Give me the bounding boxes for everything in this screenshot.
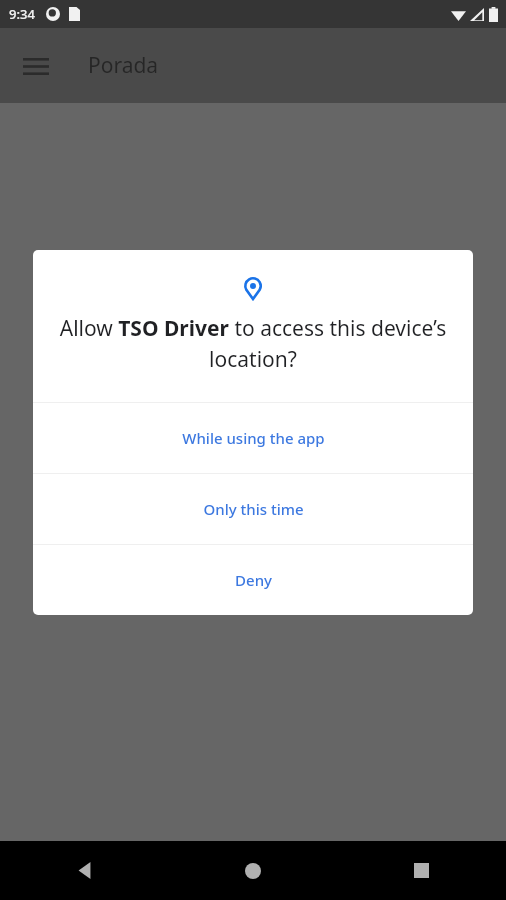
staticText: Only this time xyxy=(203,499,304,519)
button[interactable]: Recent apps xyxy=(337,841,506,900)
staticText: 9:34 xyxy=(9,5,35,23)
button[interactable]: Deny xyxy=(33,545,473,615)
staticText: Deny xyxy=(235,570,272,590)
button[interactable]: While using the app xyxy=(33,403,473,473)
button[interactable]: Back xyxy=(0,841,168,900)
button[interactable]: Only this time xyxy=(33,474,473,544)
button[interactable]: Home xyxy=(168,841,337,900)
staticText: Allow TSO Driver to access this device’s… xyxy=(55,314,451,373)
button[interactable]: Open navigation menu xyxy=(12,42,60,90)
staticText: Porada xyxy=(88,51,159,80)
staticText: While using the app xyxy=(182,428,325,448)
